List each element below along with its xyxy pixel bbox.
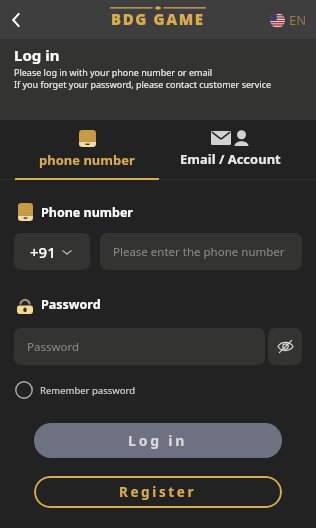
staticText: EN bbox=[289, 11, 307, 29]
staticText: +91 bbox=[30, 242, 56, 262]
staticText: Please log in with your phone number or … bbox=[14, 66, 213, 78]
staticText: Remember password bbox=[40, 384, 136, 397]
staticText: phone number bbox=[39, 151, 135, 169]
button[interactable]: +91 bbox=[14, 233, 90, 270]
staticText: Log in bbox=[128, 431, 188, 450]
staticText: If you forget your password, please cont… bbox=[14, 78, 272, 90]
staticText: Phone number bbox=[41, 204, 133, 221]
button[interactable]: Back bbox=[2, 6, 30, 34]
button[interactable]: phone number bbox=[15, 120, 159, 169]
button[interactable]: Show password bbox=[268, 328, 302, 365]
button[interactable]: Remember password bbox=[14, 381, 136, 399]
staticText: Register bbox=[119, 483, 197, 501]
button[interactable]: Password bbox=[14, 328, 265, 365]
staticText: Please enter the phone number bbox=[113, 244, 285, 260]
button[interactable]: EN bbox=[270, 11, 307, 29]
button[interactable]: Register bbox=[34, 476, 282, 508]
staticText: Email / Account bbox=[180, 150, 281, 168]
staticText: Password bbox=[27, 339, 80, 355]
staticText: Password bbox=[41, 296, 101, 313]
staticText: BDG GAME bbox=[111, 9, 205, 29]
staticText: Log in bbox=[14, 45, 60, 65]
button[interactable]: Please enter the phone number bbox=[100, 233, 302, 270]
button[interactable]: Log in bbox=[34, 423, 282, 458]
button[interactable]: Email / Account bbox=[159, 120, 301, 168]
